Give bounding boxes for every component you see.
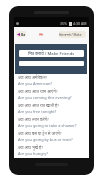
staticText: Are you going to take a shower? — [18, 123, 77, 128]
staticText: Are you free tonight? — [18, 109, 57, 114]
staticText: Are you hungry? — [18, 151, 48, 156]
button[interactable]: मित्र बनाये / Make Friends — [59, 31, 86, 38]
button[interactable]: क्या आप स्नान करेंगे? — [14, 116, 89, 130]
staticText: क्या आप स्नान करेंगे? — [18, 117, 49, 122]
staticText: क्या आप अमेरिकन? — [18, 75, 48, 80]
button[interactable]: क्या आप आज रात खाली हैं? — [14, 102, 89, 116]
button[interactable]: Back — [16, 31, 26, 37]
staticText: Are you American? — [18, 81, 53, 86]
staticText: Are you coming this evening? — [18, 95, 72, 100]
staticText: 35% — [60, 21, 68, 26]
staticText: क्या आप आज शाम आएंगे? — [18, 89, 58, 94]
staticText: Are you going by bus or train? — [18, 137, 73, 142]
staticText: मित्र बनाये / Make Friends — [59, 33, 86, 37]
staticText: क्या आप आज रात खाली हैं? — [18, 103, 59, 108]
staticText: क्या आप भूखे हैं? — [18, 145, 43, 150]
staticText: 4:30 AM — [73, 21, 87, 26]
button[interactable]: क्या आप अमेरिकन? — [14, 74, 89, 88]
other: App logo — [39, 33, 43, 36]
button[interactable]: क्या आप बस या ट्रेन से जाएंगे? — [14, 130, 89, 144]
button[interactable]: क्या आप भूखे हैं? — [14, 144, 89, 158]
staticText: Back — [21, 32, 26, 37]
button[interactable]: क्या आप आज शाम आएंगे? — [14, 88, 89, 102]
staticText: क्या आप बस या ट्रेन से जाएंगे? — [18, 131, 62, 136]
staticText: मित्र बनाये / Make Friends — [28, 51, 75, 57]
